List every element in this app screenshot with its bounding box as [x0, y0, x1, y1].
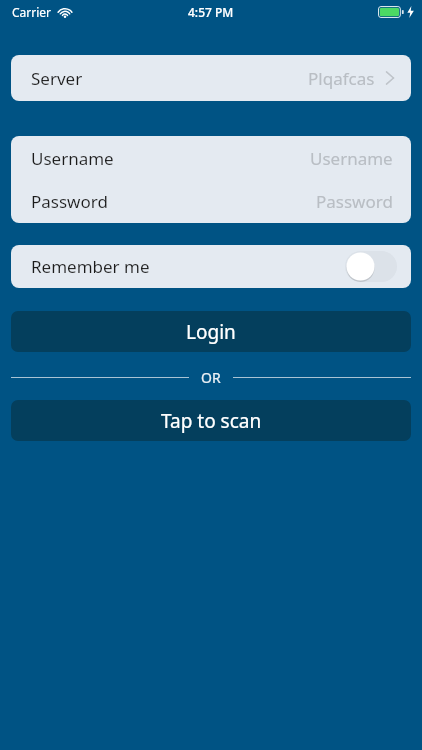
button[interactable]: Remember me — [11, 245, 411, 288]
staticText: Password — [316, 190, 393, 213]
staticText: OR — [201, 368, 221, 387]
staticText: Tap to scan — [161, 408, 262, 434]
button[interactable]: Remember me toggle — [345, 251, 397, 282]
staticText: 4:57 PM — [188, 4, 234, 20]
staticText: Login — [186, 319, 236, 345]
staticText: Username — [310, 147, 393, 170]
button[interactable]: Username — [11, 136, 411, 180]
staticText: Username — [31, 147, 114, 170]
button[interactable]: Login — [11, 311, 411, 352]
button[interactable]: Server — [11, 55, 411, 101]
staticText: Password — [31, 190, 108, 213]
staticText: Plqafcas — [308, 67, 375, 90]
staticText: Server — [31, 67, 83, 90]
staticText: Remember me — [31, 255, 150, 278]
staticText: Carrier — [12, 4, 52, 20]
button[interactable]: Password — [11, 180, 411, 223]
button[interactable]: Tap to scan — [11, 400, 411, 441]
